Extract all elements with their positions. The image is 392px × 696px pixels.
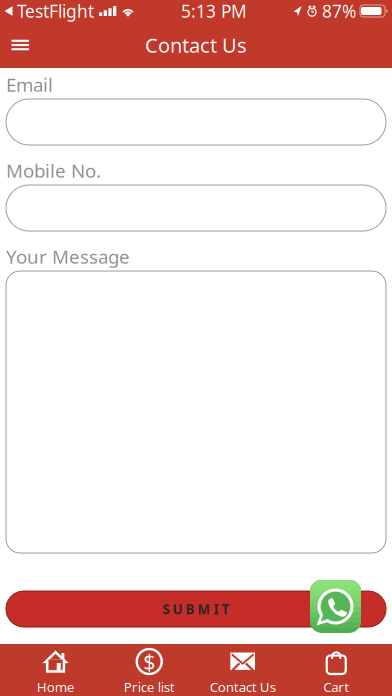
staticText: 87%: [322, 0, 356, 22]
staticText: Home: [37, 678, 75, 696]
button[interactable]: WhatsApp: [310, 580, 392, 644]
staticText: Email: [6, 72, 53, 97]
button[interactable]: Cart: [289, 644, 383, 696]
button[interactable]: Home: [9, 644, 102, 696]
button[interactable]: Contact Us: [196, 644, 289, 696]
staticText: Price list: [124, 678, 175, 696]
staticText: Cart: [323, 678, 349, 696]
staticText: S U B M I T: [162, 600, 229, 618]
staticText: TestFlight: [17, 0, 94, 22]
staticText: Your Message: [6, 244, 130, 269]
button[interactable]: Menu: [0, 22, 43, 68]
staticText: Contact Us: [145, 32, 247, 58]
staticText: 5:13 PM: [181, 0, 247, 22]
button[interactable]: $: [102, 644, 196, 696]
staticText: Contact Us: [210, 678, 276, 696]
staticText: Mobile No.: [6, 158, 101, 183]
staticText: $: [143, 647, 155, 676]
button[interactable]: S U B M I T: [0, 580, 392, 644]
